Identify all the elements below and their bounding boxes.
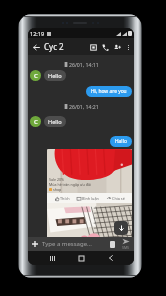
staticText: Mùa hè tràn ngập ưu đãi: [49, 182, 91, 187]
staticText: C: [34, 72, 38, 80]
staticText: SMS: [122, 245, 130, 250]
button[interactable]: Hello: [44, 116, 66, 127]
button[interactable]: Hello: [44, 70, 66, 81]
button[interactable]: More options: [123, 42, 133, 52]
staticText: Chia sẻ: [112, 196, 125, 201]
staticText: Hello: [48, 72, 62, 80]
staticText: 12:19: [30, 30, 45, 37]
button[interactable]: Back: [105, 252, 117, 264]
button[interactable]: Recent apps: [46, 252, 58, 264]
button[interactable]: Video call: [87, 41, 99, 53]
staticText: C: [34, 118, 38, 126]
button[interactable]: Back: [30, 41, 42, 53]
button[interactable]: Chia sẻ: [107, 196, 125, 201]
button[interactable]: Camera: [107, 239, 118, 250]
staticText: Hello: [48, 118, 62, 126]
button[interactable]: Download: [114, 221, 128, 235]
button[interactable]: Thích: [55, 196, 70, 201]
button[interactable]: Send SMS: [119, 238, 132, 250]
button[interactable]: Bình luận: [77, 196, 99, 201]
staticText: Thích: [60, 196, 70, 201]
button[interactable]: Call: [99, 41, 111, 53]
button[interactable]: Hi, how are you: [86, 86, 132, 97]
staticText: shop: [53, 187, 62, 192]
button[interactable]: Add attachment: [30, 239, 40, 249]
staticText: Hi, how are you: [91, 88, 127, 95]
staticText: Type a message...: [42, 240, 92, 248]
button[interactable]: Sale 20%: [47, 149, 132, 240]
button[interactable]: Hallo: [110, 136, 132, 147]
staticText: 26/01, 14:11: [69, 61, 99, 68]
staticText: Cyc 2: [44, 41, 64, 52]
button[interactable]: Home: [75, 252, 87, 264]
staticText: 26/01, 14:21: [69, 103, 99, 110]
staticText: Hallo: [115, 138, 127, 145]
staticText: Bình luận: [82, 196, 99, 201]
button[interactable]: Add person: [111, 41, 123, 53]
staticText: Sale 20%: [49, 177, 64, 182]
